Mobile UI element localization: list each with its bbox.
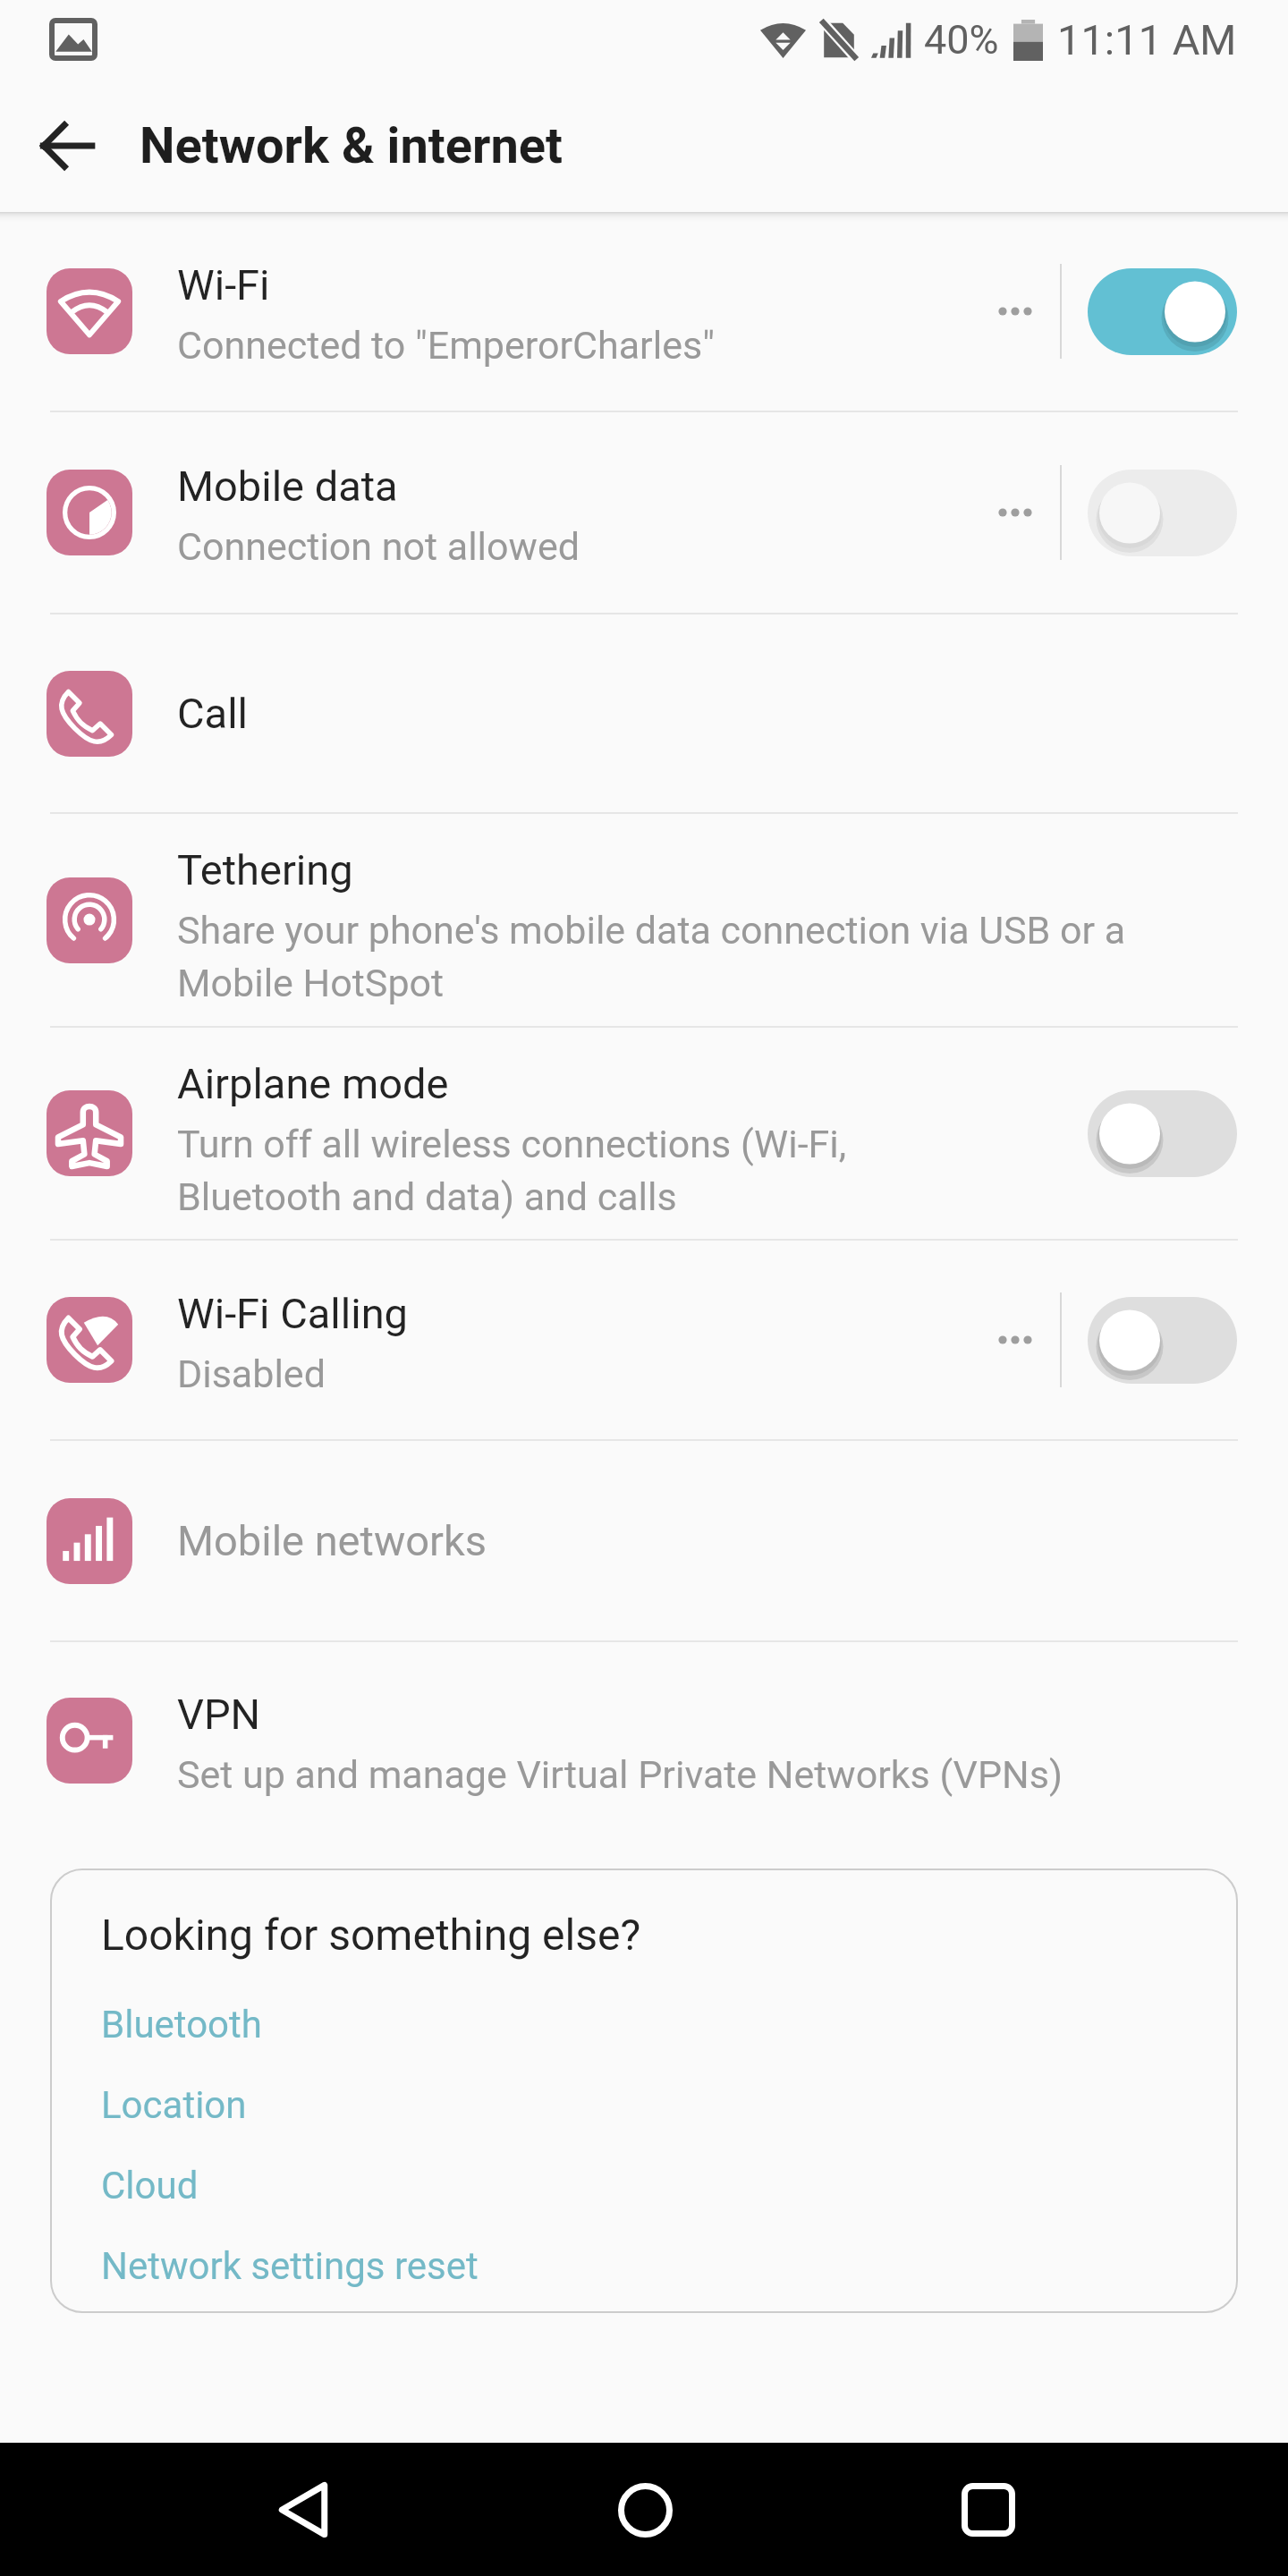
staticText: Tethering — [177, 845, 353, 894]
staticText: Mobile data — [177, 462, 398, 511]
button[interactable]: Recent apps — [926, 2447, 1051, 2572]
button[interactable]: More options for Wi-Fi Calling — [970, 1292, 1060, 1387]
staticText: Disabled — [177, 1352, 326, 1396]
staticText: Connection not allowed — [177, 524, 580, 569]
staticText: Airplane mode — [177, 1059, 449, 1108]
staticText: Cloud — [101, 2164, 199, 2207]
staticText: 40% — [924, 16, 999, 64]
staticText: Connected to "EmperorCharles" — [177, 323, 715, 368]
button[interactable]: Tethering — [0, 814, 1288, 1026]
button[interactable]: Mobile data — [0, 412, 1288, 613]
button[interactable]: Navigate up — [18, 97, 116, 195]
staticText: Network settings reset — [101, 2244, 479, 2288]
staticText: Wi-Fi — [177, 260, 270, 309]
button[interactable]: Back — [241, 2447, 366, 2572]
button[interactable]: Mobile networks — [0, 1441, 1288, 1640]
button[interactable]: Airplane mode switch — [1088, 1090, 1237, 1177]
button[interactable]: Wi-Fi Calling — [0, 1241, 1288, 1439]
button[interactable]: VPN — [0, 1642, 1288, 1839]
button[interactable]: Wi-Fi Calling switch — [1088, 1297, 1237, 1384]
staticText: 11:11 AM — [1057, 15, 1237, 64]
button[interactable]: Airplane mode — [0, 1028, 1288, 1239]
button[interactable]: Mobile data switch — [1088, 470, 1237, 556]
staticText: Mobile networks — [177, 1516, 487, 1565]
staticText: Call — [177, 689, 249, 738]
button[interactable]: Cloud — [101, 2145, 199, 2225]
button[interactable]: Location — [101, 2064, 247, 2145]
staticText: Network & internet — [140, 116, 563, 175]
staticText: Set up and manage Virtual Private Networ… — [177, 1752, 1063, 1797]
staticText: Turn off all wireless connections (Wi-Fi… — [177, 1122, 1009, 1219]
staticText: Wi-Fi Calling — [177, 1289, 408, 1338]
button[interactable]: Home — [582, 2447, 708, 2572]
button[interactable]: More options for Mobile data — [970, 465, 1060, 560]
staticText: Bluetooth — [101, 2003, 262, 2046]
staticText: Location — [101, 2083, 247, 2127]
staticText: Share your phone's mobile data connectio… — [177, 908, 1241, 1005]
button[interactable]: Call — [0, 614, 1288, 812]
button[interactable]: Network settings reset — [101, 2225, 479, 2306]
button[interactable]: More options for Wi-Fi — [970, 264, 1060, 359]
staticText: Looking for something else? — [101, 1910, 641, 1960]
staticText: VPN — [177, 1690, 261, 1739]
button[interactable]: Wi-Fi switch — [1088, 268, 1237, 355]
button[interactable]: Wi-Fi — [0, 212, 1288, 411]
button[interactable]: Bluetooth — [101, 1984, 262, 2064]
